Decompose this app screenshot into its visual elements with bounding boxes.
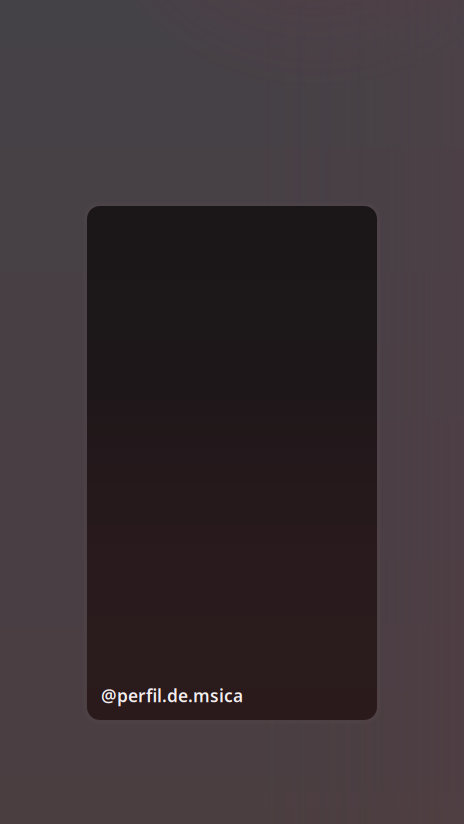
button[interactable]: @perfil.de.msica: [87, 206, 377, 720]
staticText: @perfil.de.msica: [101, 684, 243, 707]
